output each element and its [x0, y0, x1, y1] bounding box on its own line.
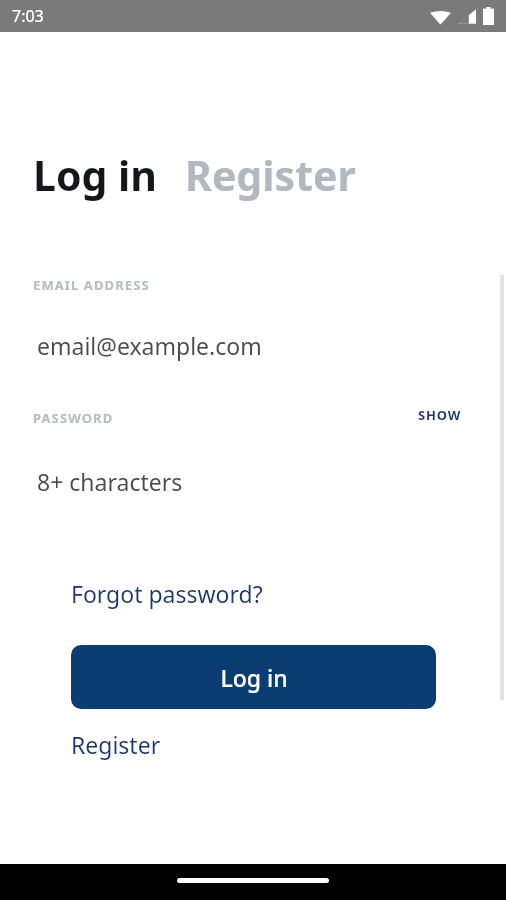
staticText: Register — [185, 147, 356, 203]
button[interactable]: SHOW — [418, 406, 462, 424]
button[interactable]: 8+ characters — [0, 446, 506, 516]
staticText: email@example.com — [37, 330, 262, 361]
button[interactable]: email@example.com — [0, 310, 506, 380]
staticText: 7:03 — [12, 5, 44, 27]
staticText: 8+ characters — [37, 466, 183, 497]
button[interactable]: Register — [71, 729, 161, 760]
staticText: Log in — [33, 147, 158, 203]
staticText: Register — [71, 729, 161, 760]
staticText: PASSWORD — [33, 409, 114, 427]
staticText: Log in — [220, 662, 288, 693]
staticText: EMAIL ADDRESS — [33, 276, 150, 294]
button[interactable]: Forgot password? — [71, 578, 263, 609]
staticText: SHOW — [418, 406, 462, 424]
staticText: Forgot password? — [71, 578, 263, 609]
button[interactable]: Log in — [71, 645, 436, 709]
button[interactable]: Register — [185, 147, 356, 203]
button[interactable]: Log in — [33, 147, 158, 203]
